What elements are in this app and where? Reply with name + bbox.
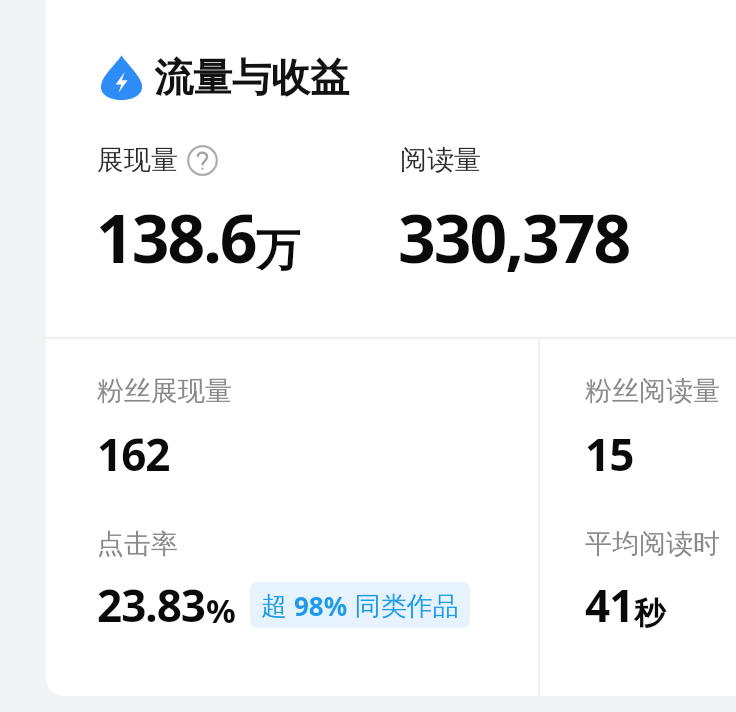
staticText: 98% bbox=[294, 588, 348, 623]
staticText: 41 bbox=[585, 575, 634, 635]
staticText: 138.6 bbox=[96, 192, 256, 282]
staticText: 流量与收益 bbox=[154, 53, 349, 102]
button[interactable]: 超 bbox=[250, 582, 470, 628]
staticText: 粉丝阅读量 bbox=[585, 374, 720, 408]
staticText: 平均阅读时长 bbox=[585, 527, 736, 561]
staticText: % bbox=[206, 588, 236, 633]
staticText: 15 bbox=[585, 424, 634, 484]
staticText: 同类作品 bbox=[348, 587, 459, 623]
staticText: 粉丝展现量 bbox=[97, 374, 232, 408]
staticText: 23.83 bbox=[97, 575, 206, 635]
button[interactable]: 流量与收益 bbox=[100, 53, 349, 102]
staticText: 阅读量 bbox=[400, 143, 481, 177]
staticText: 超 bbox=[261, 587, 294, 623]
staticText: 162 bbox=[97, 424, 170, 484]
staticText: 点击率 bbox=[97, 527, 178, 561]
staticText: 万 bbox=[256, 223, 300, 278]
staticText: 秒 bbox=[634, 594, 665, 633]
staticText: 330,378 bbox=[398, 192, 630, 282]
other: Help bbox=[187, 145, 218, 176]
staticText: 展现量 bbox=[97, 143, 178, 177]
